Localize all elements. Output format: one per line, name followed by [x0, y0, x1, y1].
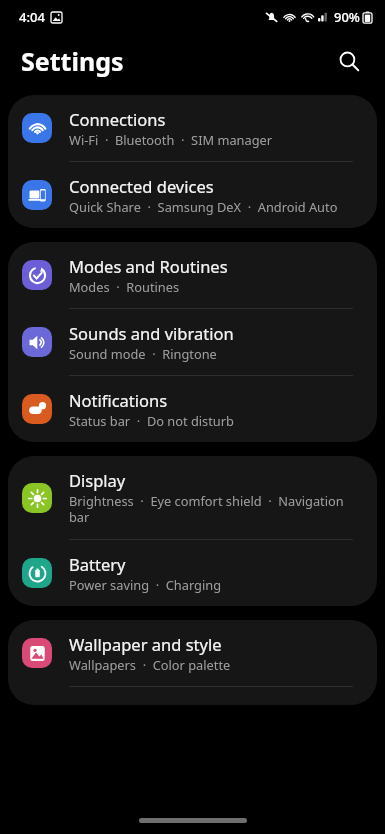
staticText: Brightness · Eye comfort shield · Naviga…: [69, 492, 361, 526]
staticText: Quick Share · Samsung DeX · Android Auto: [69, 198, 338, 215]
staticText: Modes and Routines: [69, 255, 228, 277]
button[interactable]: Search: [329, 41, 369, 81]
staticText: Display: [69, 469, 126, 491]
staticText: Power saving · Charging: [69, 576, 222, 593]
button[interactable]: Sounds and vibration: [8, 309, 377, 375]
staticText: Modes · Routines: [69, 278, 180, 295]
staticText: 90%: [334, 8, 360, 26]
button[interactable]: Wallpaper and style: [8, 620, 377, 686]
staticText: Wi-Fi · Bluetooth · SIM manager: [69, 131, 273, 148]
staticText: Wallpaper and style: [69, 633, 222, 655]
button[interactable]: Notifications: [8, 376, 377, 442]
staticText: Connections: [69, 108, 166, 130]
staticText: Connected devices: [69, 175, 214, 197]
button[interactable]: Display: [8, 456, 377, 539]
button[interactable]: Connections: [8, 95, 377, 161]
button[interactable]: Modes and Routines: [8, 242, 377, 308]
staticText: Sounds and vibration: [69, 322, 234, 344]
staticText: Settings: [21, 44, 124, 78]
staticText: Status bar · Do not disturb: [69, 412, 234, 429]
button[interactable]: Battery: [8, 540, 377, 606]
button[interactable]: Connected devices: [8, 162, 377, 228]
staticText: Wallpapers · Color palette: [69, 656, 231, 673]
staticText: 4:04: [19, 8, 45, 26]
staticText: Sound mode · Ringtone: [69, 345, 217, 362]
staticText: Battery: [69, 553, 126, 575]
staticText: Notifications: [69, 389, 168, 411]
